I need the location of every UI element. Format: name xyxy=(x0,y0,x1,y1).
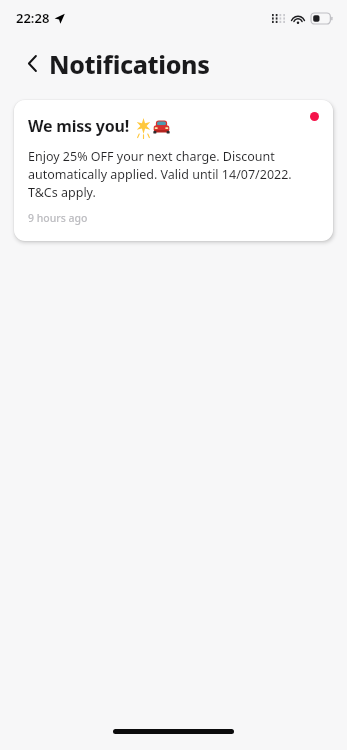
staticText: Notifications xyxy=(49,47,210,81)
staticText: Enjoy 25% OFF your next charge. Discount… xyxy=(28,148,295,201)
staticText: We miss you! xyxy=(28,115,130,137)
staticText: 22:28 xyxy=(16,9,50,27)
staticText: 9 hours ago xyxy=(28,211,88,225)
button[interactable]: Back xyxy=(18,49,46,77)
button[interactable]: We miss you! xyxy=(14,100,333,241)
